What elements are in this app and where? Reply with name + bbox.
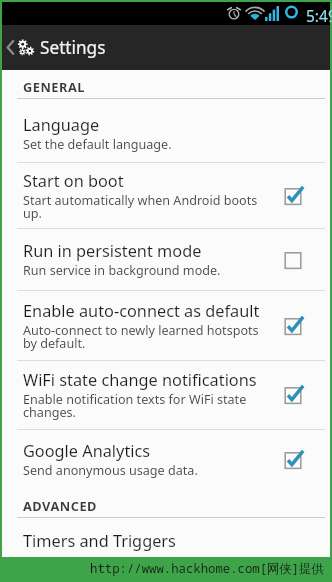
- staticText: http://www.hackhome.com[网侠]提供: [90, 560, 324, 577]
- button[interactable]: Google Analytics: [266, 440, 320, 480]
- staticText: Start automatically when Android boots u…: [23, 192, 260, 222]
- staticText: WiFi state change notifications: [23, 369, 257, 391]
- staticText: Send anonymous usage data.: [23, 462, 198, 479]
- staticText: Auto-connect to newly learned hotspots b…: [23, 322, 260, 352]
- staticText: Run in persistent mode: [23, 240, 202, 262]
- button[interactable]: WiFi state change notifications: [2, 361, 330, 429]
- button[interactable]: WiFi state change notifications: [266, 375, 320, 415]
- staticText: ADVANCED: [23, 497, 97, 514]
- staticText: Start on boot: [23, 170, 124, 192]
- button[interactable]: Enable auto-connect as default: [266, 306, 320, 346]
- button[interactable]: Timers and Triggers: [2, 518, 330, 557]
- button[interactable]: Google Analytics: [2, 430, 330, 489]
- staticText: Run service in background mode.: [23, 262, 221, 279]
- staticText: GENERAL: [23, 78, 85, 95]
- button[interactable]: Start on boot: [266, 176, 320, 216]
- staticText: Enable auto-connect as default: [23, 300, 260, 322]
- staticText: Set the default language.: [23, 136, 172, 153]
- button[interactable]: Settings, navigate up: [2, 25, 330, 70]
- button[interactable]: Run in persistent mode: [266, 240, 320, 280]
- button[interactable]: Run in persistent mode: [2, 229, 330, 290]
- staticText: Google Analytics: [23, 440, 151, 462]
- button[interactable]: Language: [2, 99, 330, 162]
- button[interactable]: Enable auto-connect as default: [2, 291, 330, 360]
- staticText: Enable notification texts for WiFi state…: [23, 391, 260, 421]
- staticText: Settings: [40, 36, 106, 59]
- staticText: Timers and Triggers: [23, 530, 176, 552]
- staticText: Language: [23, 114, 100, 136]
- button[interactable]: Start on boot: [2, 163, 330, 228]
- staticText: 5:49: [306, 5, 332, 26]
